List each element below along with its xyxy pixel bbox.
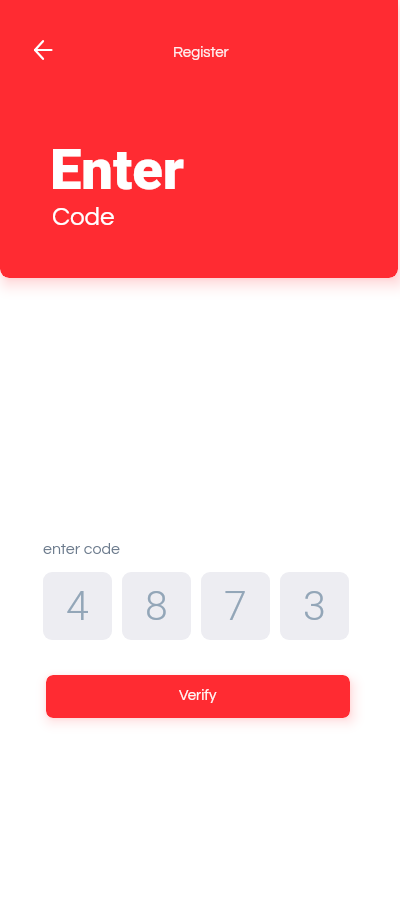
button[interactable]: Verify <box>46 675 350 718</box>
staticText: enter code <box>43 541 120 557</box>
staticText: Enter <box>50 137 184 203</box>
staticText: Verify <box>179 688 217 703</box>
staticText: 8 <box>145 582 168 630</box>
button[interactable]: 8 <box>122 572 191 640</box>
staticText: 4 <box>66 582 89 630</box>
staticText: 7 <box>224 582 247 630</box>
button[interactable]: 3 <box>280 572 349 640</box>
staticText: Code <box>52 204 115 231</box>
button[interactable]: 4 <box>43 572 112 640</box>
button[interactable]: Back <box>23 30 63 70</box>
staticText: Register <box>173 45 229 60</box>
button[interactable]: 7 <box>201 572 270 640</box>
staticText: 3 <box>303 582 326 630</box>
